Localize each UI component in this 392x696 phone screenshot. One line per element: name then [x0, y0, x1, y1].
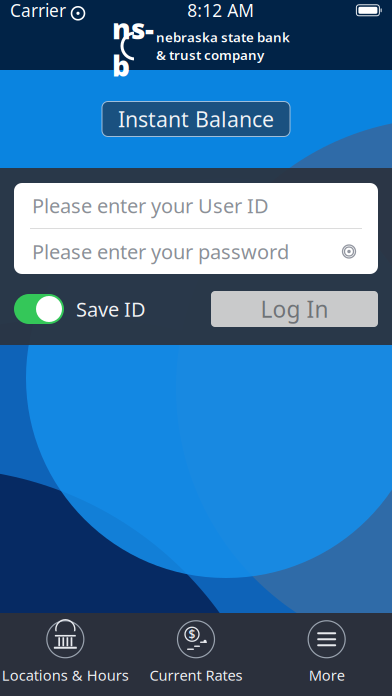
button[interactable]: Locations & Hours	[0, 614, 131, 691]
staticText: nsb	[112, 10, 154, 84]
button[interactable]: $	[131, 614, 261, 691]
staticText: Carrier	[10, 0, 66, 22]
staticText: 8:12 AM	[187, 0, 254, 22]
staticText: $	[188, 626, 195, 642]
staticText: Log In	[260, 294, 328, 324]
button[interactable]: Save ID	[14, 294, 146, 324]
staticText: More	[309, 665, 345, 685]
staticText: Please enter your User ID	[32, 192, 269, 219]
staticText: nebraska state bank	[156, 28, 290, 46]
staticText: & trust company	[156, 46, 264, 64]
staticText: Current Rates	[149, 665, 242, 685]
staticText: Save ID	[76, 296, 146, 322]
button[interactable]: Log In	[211, 291, 378, 327]
button[interactable]: Instant Balance	[102, 101, 290, 136]
staticText: Locations & Hours	[2, 665, 129, 685]
staticText: Please enter your password	[32, 238, 289, 265]
staticText: Instant Balance	[118, 105, 274, 133]
button[interactable]: More	[261, 614, 392, 691]
button[interactable]: Show password	[328, 234, 360, 268]
